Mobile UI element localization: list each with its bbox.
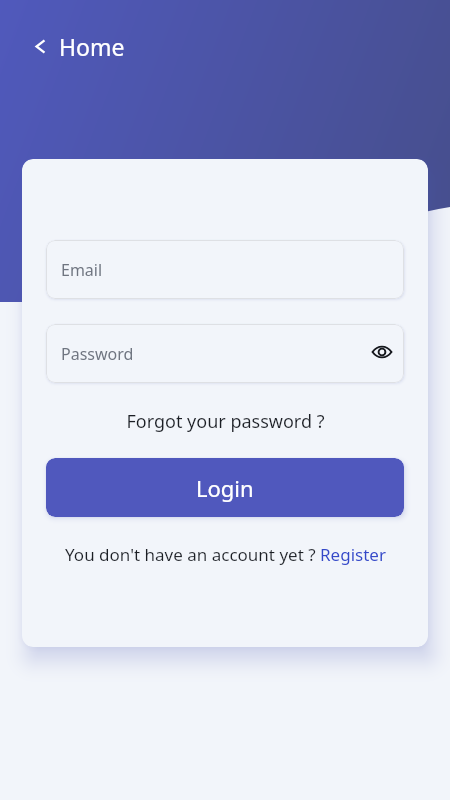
staticText: Login [196, 473, 254, 503]
button[interactable]: Back [22, 30, 55, 63]
button[interactable]: Forgot your password ? [22, 406, 428, 436]
staticText: Password [61, 343, 134, 365]
button[interactable]: Password [46, 324, 404, 383]
staticText: Forgot your password ? [126, 409, 325, 434]
button[interactable]: Email [46, 240, 404, 299]
button[interactable]: You don't have an account yet ? Register [22, 539, 428, 569]
staticText: Email [61, 259, 103, 281]
staticText: You don't have an account yet ? Register [65, 543, 386, 566]
staticText: Home [59, 31, 125, 62]
button[interactable]: Login [46, 458, 404, 517]
button[interactable]: Show password [366, 336, 398, 368]
